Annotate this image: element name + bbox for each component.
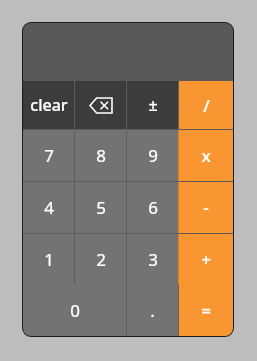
button[interactable]: 8 <box>75 130 126 181</box>
button[interactable]: ± <box>127 81 178 129</box>
staticText: 3 <box>148 248 158 271</box>
staticText: . <box>150 299 155 322</box>
staticText: 0 <box>70 299 80 322</box>
button[interactable]: 6 <box>127 182 178 233</box>
button[interactable]: 2 <box>75 234 126 285</box>
button[interactable]: = <box>179 285 233 336</box>
staticText: 8 <box>96 144 106 167</box>
staticText: 2 <box>96 248 106 271</box>
button[interactable]: / <box>179 81 233 129</box>
button[interactable]: 9 <box>127 130 178 181</box>
button[interactable]: 0 <box>23 285 126 336</box>
button[interactable]: 7 <box>23 130 74 181</box>
button[interactable]: 1 <box>23 234 74 285</box>
staticText: x <box>201 144 211 167</box>
staticText: clear <box>30 94 68 116</box>
staticText: 5 <box>96 196 106 219</box>
button[interactable]: Backspace <box>75 81 126 129</box>
button[interactable]: clear <box>23 81 74 129</box>
staticText: / <box>203 94 210 117</box>
staticText: = <box>201 299 211 322</box>
staticText: 4 <box>44 196 54 219</box>
staticText: 6 <box>148 196 158 219</box>
button[interactable]: x <box>179 130 233 181</box>
staticText: 9 <box>148 144 158 167</box>
staticText: + <box>201 248 211 271</box>
staticText: - <box>203 196 209 219</box>
staticText: 7 <box>44 144 54 167</box>
staticText: 1 <box>44 248 54 271</box>
button[interactable]: 4 <box>23 182 74 233</box>
button[interactable]: . <box>127 285 178 336</box>
button[interactable]: - <box>179 182 233 233</box>
button[interactable]: + <box>179 234 233 285</box>
button[interactable]: 5 <box>75 182 126 233</box>
staticText: ± <box>148 94 158 116</box>
button[interactable]: 3 <box>127 234 178 285</box>
